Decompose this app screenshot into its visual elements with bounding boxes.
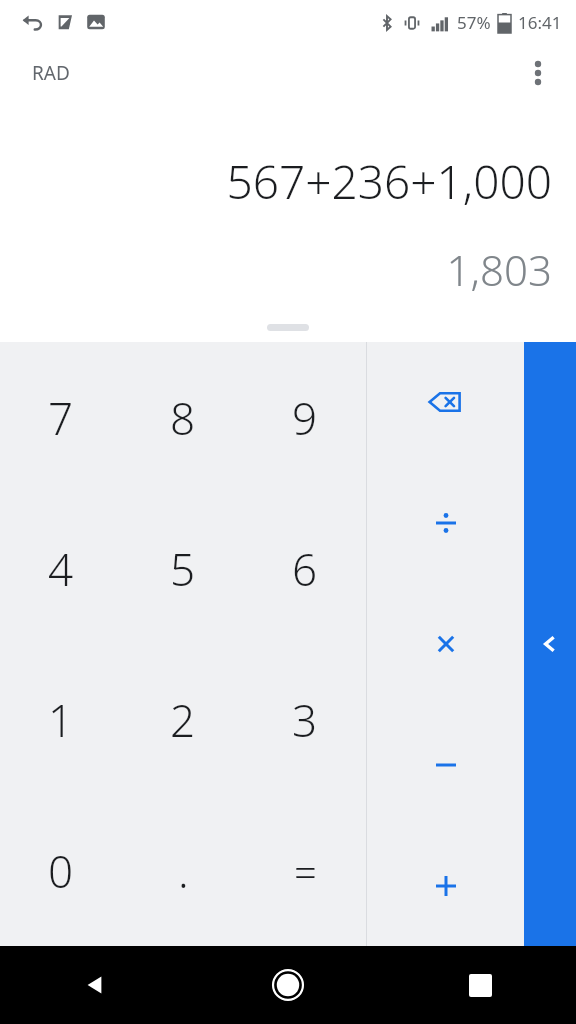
button[interactable]: 3 [244, 644, 366, 795]
staticText: 7 [48, 388, 74, 448]
button[interactable]: Recent apps [384, 946, 576, 1024]
staticText: . [178, 841, 189, 901]
staticText: 5 [170, 539, 196, 599]
button[interactable]: RAD [14, 52, 88, 94]
button[interactable]: 0 [0, 795, 122, 946]
staticText: 16:41 [518, 11, 562, 34]
button[interactable]: = [244, 795, 366, 946]
button[interactable]: Show advanced pad [524, 342, 576, 946]
staticText: 9 [292, 388, 318, 448]
button[interactable]: Add [367, 825, 524, 946]
staticText: 567+236+1,000 [0, 150, 552, 213]
staticText: 0 [48, 841, 74, 901]
button[interactable]: . [122, 795, 244, 946]
staticText: = [294, 844, 317, 898]
button[interactable]: 1 [0, 644, 122, 795]
staticText: 3 [292, 690, 318, 750]
button[interactable]: 9 [244, 342, 366, 493]
staticText: 1,803 [0, 241, 552, 298]
staticText: RAD [32, 60, 70, 86]
staticText: 2 [170, 690, 196, 750]
button[interactable]: Multiply [367, 583, 524, 704]
staticText: 1 [48, 690, 74, 750]
button[interactable]: 6 [244, 493, 366, 644]
staticText: 4 [48, 539, 74, 599]
button[interactable]: Subtract [367, 704, 524, 825]
button[interactable]: 4 [0, 493, 122, 644]
button[interactable]: 8 [122, 342, 244, 493]
button[interactable]: 7 [0, 342, 122, 493]
button[interactable]: 2 [122, 644, 244, 795]
staticText: 57% [457, 11, 491, 34]
button[interactable]: Home [192, 946, 384, 1024]
button[interactable]: Back [0, 946, 192, 1024]
button[interactable]: More options [510, 45, 566, 101]
staticText: 8 [170, 388, 196, 448]
button[interactable]: Delete [367, 342, 524, 462]
button[interactable]: Divide [367, 462, 524, 583]
staticText: 6 [292, 539, 318, 599]
button[interactable]: 5 [122, 493, 244, 644]
